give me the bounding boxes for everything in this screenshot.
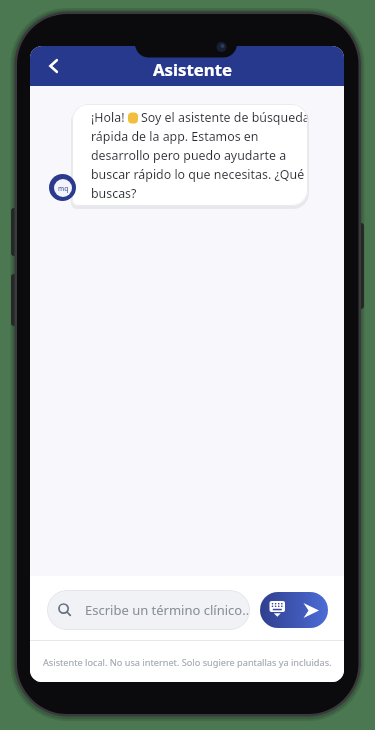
staticText: ¡Hola!	[91, 109, 125, 126]
button[interactable]	[38, 50, 70, 82]
button[interactable]	[260, 592, 328, 628]
staticText: desarrollo pero puedo ayudarte a	[91, 147, 287, 164]
staticText: Soy el asistente de búsqueda	[141, 109, 308, 126]
staticText: rápida de la app. Estamos en	[91, 128, 259, 145]
staticText: buscas?	[91, 185, 137, 202]
staticText: Asistente local. No usa internet. Solo s…	[43, 656, 332, 669]
staticText: Escribe un término clínico...	[85, 601, 250, 619]
staticText: Asistente	[153, 58, 233, 81]
staticText: buscar rápido lo que necesitas. ¿Qué	[91, 166, 305, 183]
staticText: mq	[58, 184, 69, 193]
button[interactable]: Escribe un término clínico...	[47, 590, 250, 630]
